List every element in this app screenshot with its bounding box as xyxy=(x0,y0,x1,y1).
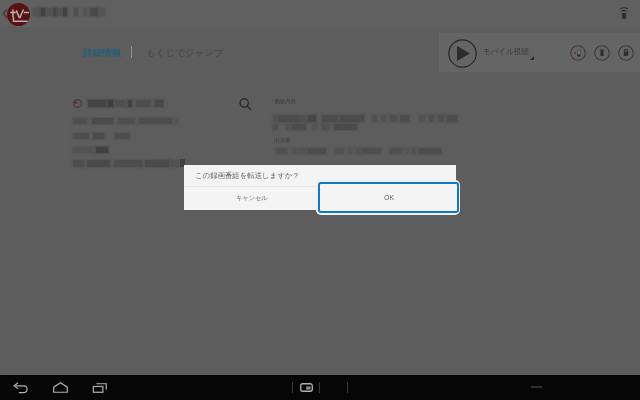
staticText: 番組内容 xyxy=(274,98,296,105)
button[interactable]: Play xyxy=(448,39,477,68)
button[interactable]: OK xyxy=(318,182,459,213)
staticText: モバイル視聴 xyxy=(483,47,529,56)
button[interactable]: Transfer to device xyxy=(570,45,586,61)
button[interactable]: Lock xyxy=(618,45,634,61)
button[interactable]: Remote control xyxy=(611,1,637,27)
staticText: 詳細情報 xyxy=(83,47,121,59)
staticText: OK xyxy=(384,193,394,203)
button[interactable]: Back xyxy=(7,375,33,400)
staticText: キャンセル xyxy=(236,194,268,202)
button[interactable]: Channel xyxy=(7,3,30,26)
button[interactable]: Back xyxy=(0,5,10,22)
button[interactable]: もくじでジャンプ xyxy=(146,47,224,59)
staticText: もくじでジャンプ xyxy=(146,47,224,59)
button[interactable]: モバイル視聴 xyxy=(483,47,529,56)
button[interactable]: キャンセル xyxy=(184,186,320,210)
button[interactable]: Picture in picture xyxy=(293,375,319,400)
button[interactable]: 詳細情報 xyxy=(83,47,121,59)
button[interactable]: Home xyxy=(47,375,73,400)
staticText: この録画番組を転送しますか？ xyxy=(195,171,300,180)
button[interactable]: Recent apps xyxy=(87,375,113,400)
button[interactable]: Search xyxy=(236,95,254,113)
staticText: 出演者 xyxy=(274,137,291,144)
button[interactable]: Delete xyxy=(594,45,610,61)
